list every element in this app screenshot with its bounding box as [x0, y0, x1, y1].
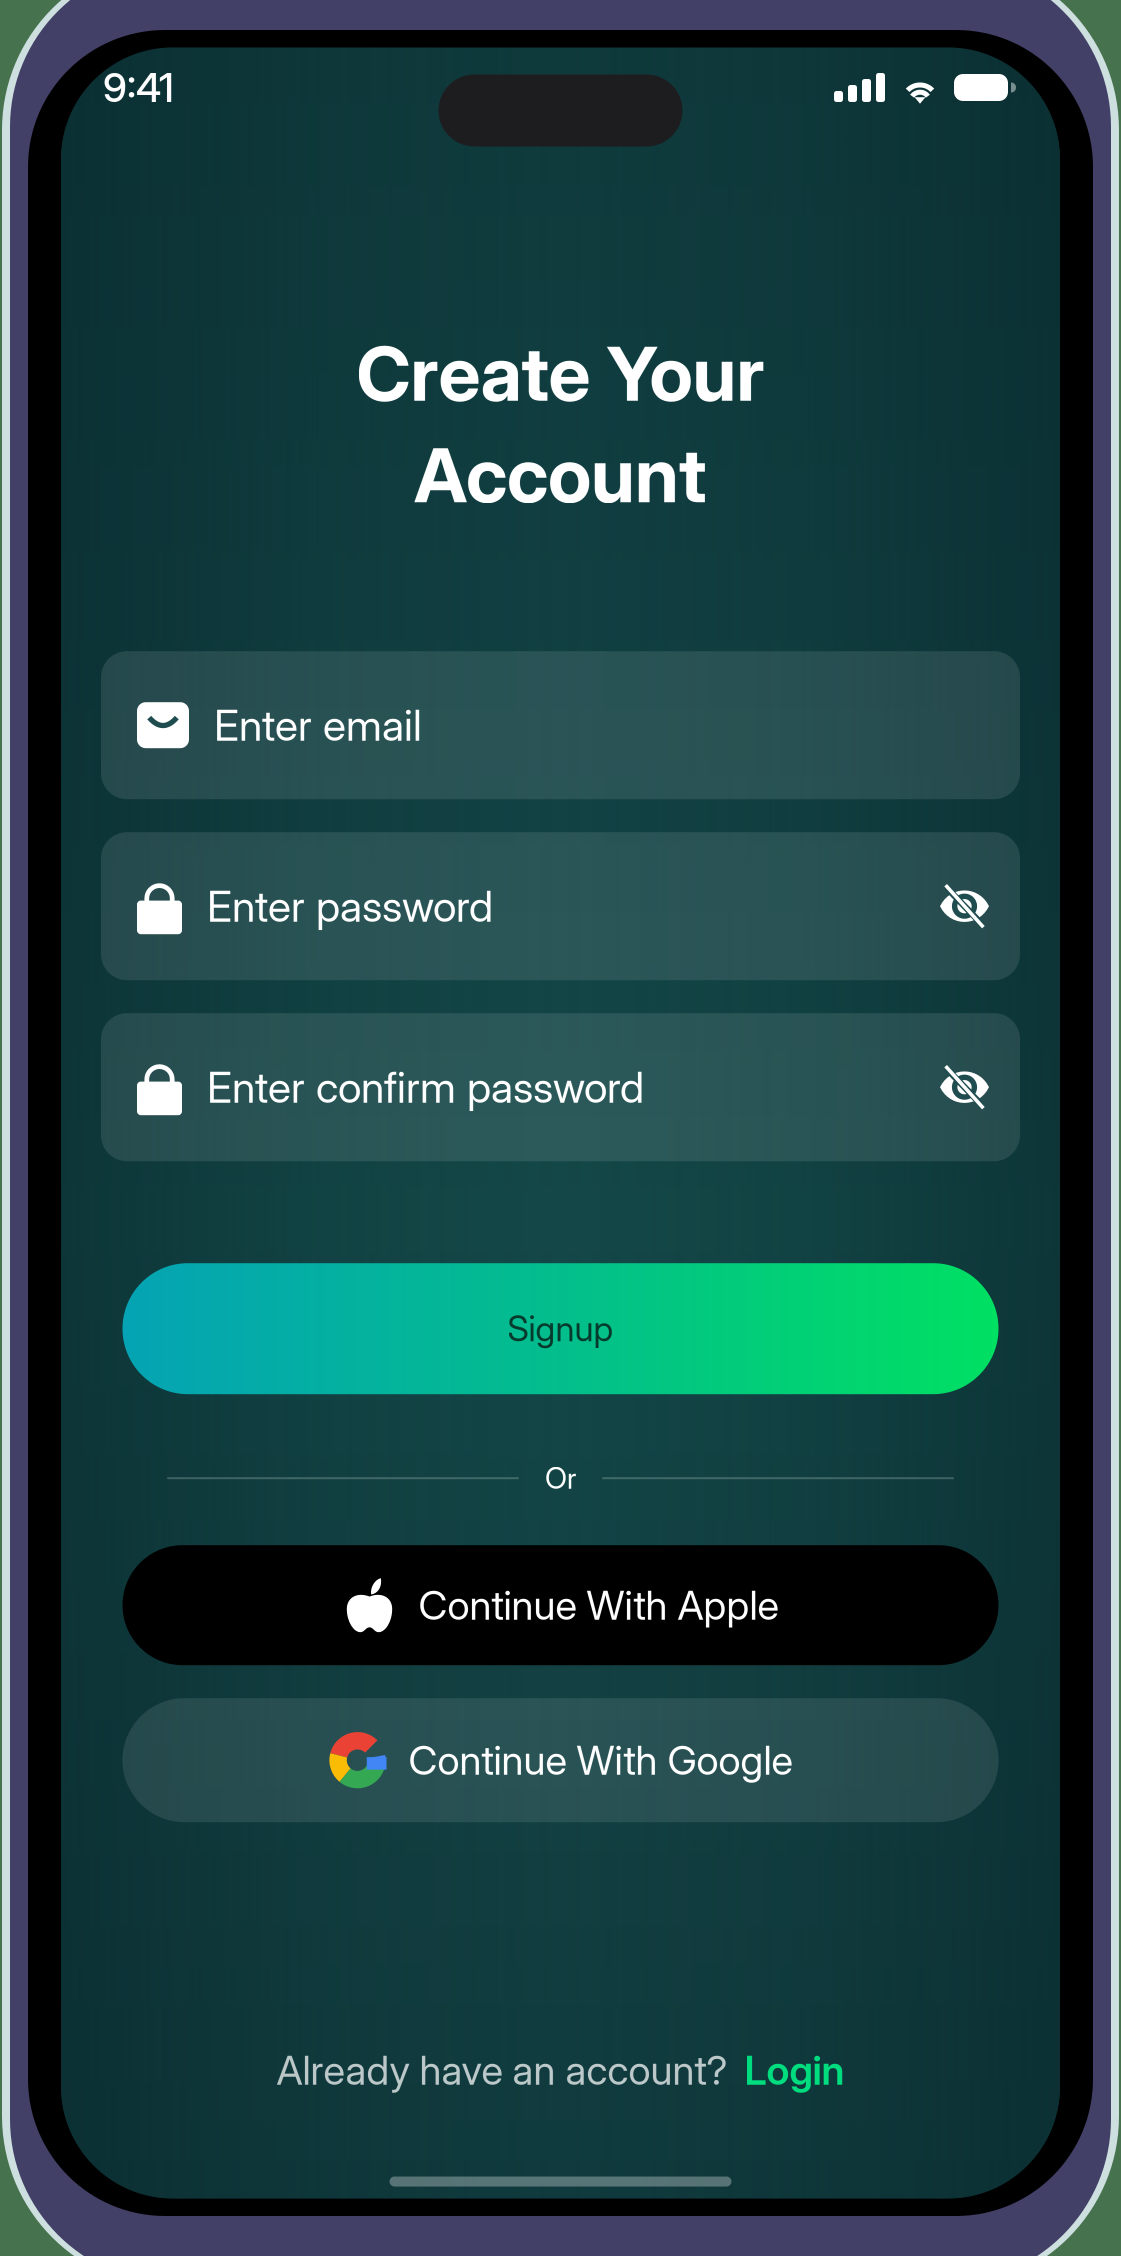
button[interactable]: Enter email [101, 651, 1020, 799]
staticText: Account [414, 430, 707, 520]
staticText: Already have an account? [276, 2046, 727, 2094]
button[interactable]: Already have an account? [276, 2046, 844, 2094]
staticText: Continue With Apple [418, 1581, 778, 1629]
button[interactable]: Enter confirm password [101, 1013, 1020, 1161]
staticText: 9:41 [103, 63, 174, 112]
staticText: Enter password [207, 880, 493, 932]
button[interactable]: Enter password [101, 832, 1020, 980]
staticText: Continue With Google [408, 1736, 792, 1784]
staticText: Signup [507, 1308, 613, 1350]
staticText: Create Your [356, 328, 764, 419]
button[interactable]: Continue With Apple [122, 1545, 998, 1665]
button[interactable]: Signup [122, 1263, 998, 1394]
staticText: Login [744, 2046, 844, 2094]
staticText: Enter email [214, 699, 422, 751]
button[interactable]: Continue With Google [122, 1698, 998, 1822]
staticText: Or [545, 1460, 576, 1496]
staticText: Enter confirm password [207, 1061, 644, 1113]
